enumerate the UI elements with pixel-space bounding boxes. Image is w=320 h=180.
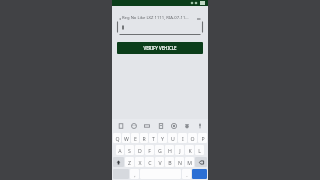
- button[interactable]: A: [116, 145, 124, 155]
- button[interactable]: Emoji: [129, 121, 138, 130]
- button[interactable]: J: [175, 145, 184, 155]
- button[interactable]: .: [182, 169, 191, 179]
- staticText: A: [118, 147, 122, 154]
- button[interactable]: Shift: [113, 157, 124, 167]
- button[interactable]: S: [125, 145, 134, 155]
- button[interactable]: Z: [125, 157, 134, 167]
- staticText: C: [148, 159, 152, 166]
- staticText: G: [158, 147, 162, 154]
- staticText: T: [152, 135, 155, 142]
- button[interactable]: Q: [113, 133, 121, 143]
- button[interactable]: I: [178, 133, 187, 143]
- staticText: ,: [134, 171, 136, 178]
- staticText: F: [148, 147, 151, 154]
- staticText: S: [128, 147, 131, 154]
- staticText: Z: [128, 159, 131, 166]
- staticText: N: [178, 159, 182, 166]
- button[interactable]: Voice input: [195, 121, 204, 130]
- button[interactable]: F: [145, 145, 154, 155]
- staticText: P: [201, 135, 205, 142]
- button[interactable]: X: [135, 157, 144, 167]
- button[interactable]: Y: [158, 133, 167, 143]
- staticText: Y: [161, 135, 164, 142]
- staticText: J: [179, 147, 181, 154]
- button[interactable]: T: [149, 133, 157, 143]
- staticText: .: [186, 171, 188, 178]
- staticText: L: [198, 147, 201, 154]
- staticText: E: [134, 135, 137, 142]
- button[interactable]: VERIFY VEHICLE: [117, 42, 203, 54]
- staticText: M: [187, 159, 192, 166]
- button[interactable]: Settings: [169, 121, 178, 130]
- button[interactable]: O: [188, 133, 197, 143]
- staticText: VERIFY VEHICLE: [143, 45, 177, 51]
- staticText: I: [182, 135, 184, 142]
- button[interactable]: Backspace: [195, 157, 207, 167]
- staticText: O: [190, 135, 195, 142]
- button[interactable]: Clipboard: [116, 121, 125, 130]
- button[interactable]: Enter: [192, 169, 207, 179]
- staticText: W: [124, 135, 129, 142]
- button[interactable]: D: [135, 145, 144, 155]
- button[interactable]: U: [168, 133, 177, 143]
- button[interactable]: L: [195, 145, 204, 155]
- staticText: V: [158, 159, 162, 166]
- button[interactable]: P: [198, 133, 207, 143]
- staticText: X: [138, 159, 142, 166]
- button[interactable]: K: [185, 145, 194, 155]
- button[interactable]: M: [185, 157, 194, 167]
- button[interactable]: N: [175, 157, 184, 167]
- button[interactable]: B: [165, 157, 174, 167]
- staticText: D: [138, 147, 142, 154]
- staticText: K: [188, 147, 192, 154]
- staticText: U: [171, 135, 175, 142]
- button[interactable]: GIF: [142, 121, 151, 130]
- staticText: Q: [115, 135, 120, 142]
- button[interactable]: Themes: [182, 121, 191, 130]
- button[interactable]: W: [122, 133, 130, 143]
- staticText: B: [168, 159, 172, 166]
- button[interactable]: V: [155, 157, 164, 167]
- button[interactable]: H: [165, 145, 174, 155]
- button[interactable]: C: [145, 157, 154, 167]
- button[interactable]: Translate: [156, 121, 165, 130]
- staticText: Reg No Like LXZ 1111, RIA-07-11…: [122, 15, 189, 21]
- staticText: H: [168, 147, 172, 154]
- button[interactable]: Reg No Like LXZ 1111, RIA-07-11…: [117, 15, 203, 35]
- button[interactable]: G: [155, 145, 164, 155]
- staticText: R: [142, 135, 146, 142]
- button[interactable]: R: [140, 133, 148, 143]
- button[interactable]: ,: [130, 169, 139, 179]
- button[interactable]: E: [131, 133, 139, 143]
